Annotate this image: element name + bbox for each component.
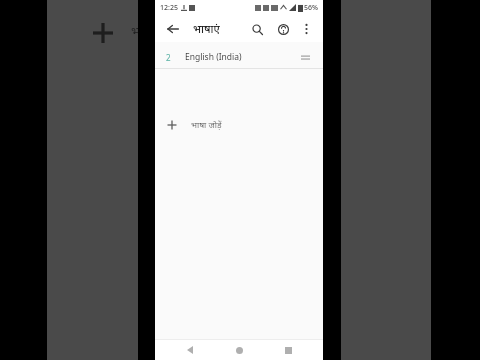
button[interactable]: Reorder — [298, 50, 312, 64]
button[interactable]: भाषा जोड़ें — [155, 113, 323, 137]
button[interactable]: Back — [176, 340, 204, 360]
staticText: भा — [131, 22, 144, 34]
staticText: 56% — [304, 3, 318, 13]
button[interactable]: Recent apps — [274, 340, 302, 360]
button[interactable]: Back — [163, 19, 183, 39]
staticText: English (India) — [185, 51, 242, 63]
button[interactable]: More options — [297, 20, 315, 38]
staticText: 12:25 — [160, 3, 178, 13]
button[interactable]: Search — [247, 19, 267, 39]
staticText: भाषा जोड़ें — [191, 119, 222, 131]
staticText: भाषाएं — [193, 21, 220, 36]
button[interactable]: 2 — [155, 46, 323, 68]
button[interactable]: Home — [225, 340, 253, 360]
button[interactable]: Help — [273, 19, 293, 39]
staticText: 2 — [166, 52, 171, 63]
